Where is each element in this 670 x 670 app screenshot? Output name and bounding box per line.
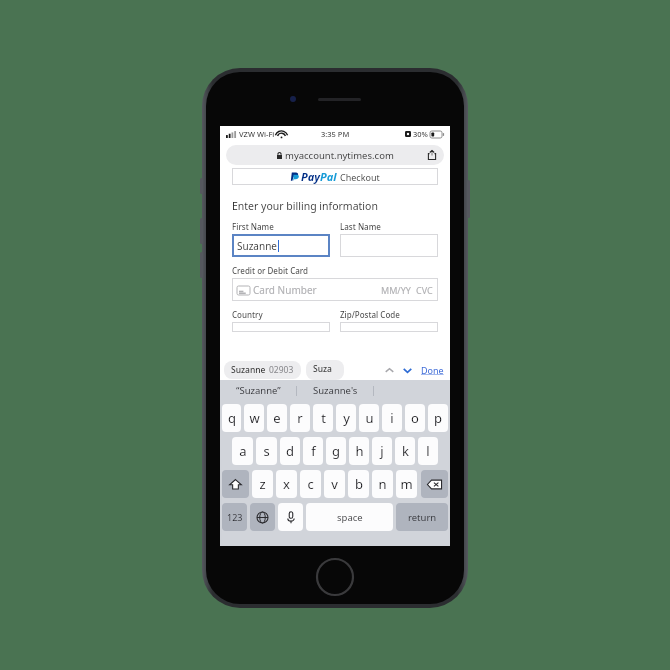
staticText: g: [332, 442, 340, 460]
staticText: l: [426, 442, 430, 460]
staticText: j: [380, 442, 384, 460]
staticText: return: [408, 511, 437, 524]
button[interactable]: j: [372, 437, 392, 465]
staticText: 3:35 PM: [321, 129, 350, 139]
button[interactable]: Previous field: [382, 363, 396, 377]
staticText: q: [228, 409, 236, 427]
button[interactable]: v: [324, 470, 345, 498]
staticText: First Name: [232, 221, 274, 232]
button[interactable]: g: [326, 437, 346, 465]
staticText: space: [337, 511, 363, 524]
button[interactable]: f: [303, 437, 323, 465]
button[interactable]: Card Number: [232, 278, 438, 301]
button[interactable]: space: [306, 503, 393, 531]
staticText: r: [297, 409, 303, 427]
button[interactable]: [232, 322, 330, 332]
button[interactable]: k: [395, 437, 415, 465]
staticText: Suzanne's: [313, 384, 358, 397]
staticText: Credit or Debit Card: [232, 265, 309, 276]
staticText: Last Name: [340, 221, 381, 232]
staticText: m: [400, 475, 413, 493]
staticText: e: [273, 409, 281, 427]
button[interactable]: myaccount.nytimes.com: [226, 145, 444, 165]
button[interactable]: x: [276, 470, 297, 498]
button[interactable]: u: [359, 404, 379, 432]
staticText: h: [355, 442, 364, 460]
staticText: s: [263, 442, 270, 460]
staticText: MM/YY: [381, 284, 411, 296]
staticText: Country: [232, 309, 263, 320]
button[interactable]: [340, 322, 438, 332]
button[interactable]: i: [382, 404, 402, 432]
staticText: u: [365, 409, 374, 427]
button[interactable]: Backspace: [421, 470, 448, 498]
button[interactable]: t: [313, 404, 333, 432]
button[interactable]: y: [336, 404, 356, 432]
button[interactable]: Dictation: [278, 503, 303, 531]
button[interactable]: c: [300, 470, 321, 498]
staticText: k: [402, 442, 409, 460]
button[interactable]: 123: [222, 503, 247, 531]
button[interactable]: d: [280, 437, 300, 465]
staticText: Done: [421, 364, 444, 376]
staticText: z: [259, 475, 266, 493]
button[interactable]: return: [396, 503, 448, 531]
button[interactable]: l: [418, 437, 438, 465]
staticText: Pay: [301, 169, 320, 184]
button[interactable]: Suzanne: [232, 234, 330, 257]
button[interactable]: r: [290, 404, 310, 432]
button[interactable]: p: [428, 404, 448, 432]
staticText: d: [286, 442, 294, 460]
button[interactable]: Suzanne: [224, 361, 301, 379]
button[interactable]: s: [256, 437, 277, 465]
staticText: b: [355, 475, 363, 493]
staticText: t: [321, 409, 326, 427]
staticText: Card Number: [253, 283, 317, 297]
button[interactable]: Pay: [232, 168, 438, 185]
button[interactable]: Change keyboard: [250, 503, 275, 531]
button[interactable]: m: [396, 470, 417, 498]
staticText: Pal: [320, 169, 337, 184]
staticText: Zip/Postal Code: [340, 309, 400, 320]
staticText: Suzanne: [231, 364, 266, 376]
button[interactable]: b: [348, 470, 369, 498]
button[interactable]: h: [349, 437, 369, 465]
staticText: a: [239, 442, 247, 460]
staticText: o: [411, 409, 419, 427]
staticText: f: [311, 442, 316, 460]
staticText: c: [307, 475, 314, 493]
staticText: VZW Wi-Fi: [239, 129, 275, 139]
staticText: 02903: [269, 364, 294, 376]
button[interactable]: a: [232, 437, 253, 465]
staticText: y: [343, 409, 350, 427]
button[interactable]: o: [405, 404, 425, 432]
button[interactable]: z: [252, 470, 273, 498]
button[interactable]: Done: [419, 364, 446, 376]
staticText: Checkout: [340, 171, 380, 183]
button[interactable]: e: [267, 404, 287, 432]
button[interactable]: n: [372, 470, 393, 498]
button[interactable]: [340, 234, 438, 257]
staticText: w: [249, 409, 260, 427]
button[interactable]: q: [222, 404, 241, 432]
staticText: v: [331, 475, 338, 493]
button[interactable]: Share: [426, 149, 438, 161]
button[interactable]: w: [244, 404, 264, 432]
staticText: Suzanne: [313, 363, 337, 377]
staticText: myaccount.nytimes.com: [285, 149, 394, 162]
staticText: “Suzanne”: [236, 384, 281, 397]
staticText: Suzanne: [237, 239, 277, 253]
button[interactable]: Suzanne's: [297, 380, 373, 401]
staticText: CVC: [416, 284, 433, 296]
staticText: p: [434, 409, 442, 427]
staticText: 123: [227, 511, 243, 523]
button[interactable]: “Suzanne”: [220, 380, 296, 401]
staticText: 30%: [413, 129, 428, 139]
staticText: x: [283, 475, 290, 493]
button[interactable]: Shift: [222, 470, 249, 498]
button[interactable]: Next field: [400, 363, 414, 377]
staticText: n: [378, 475, 387, 493]
staticText: Enter your billing information: [232, 199, 378, 213]
button[interactable]: Suzanne: [306, 360, 344, 380]
